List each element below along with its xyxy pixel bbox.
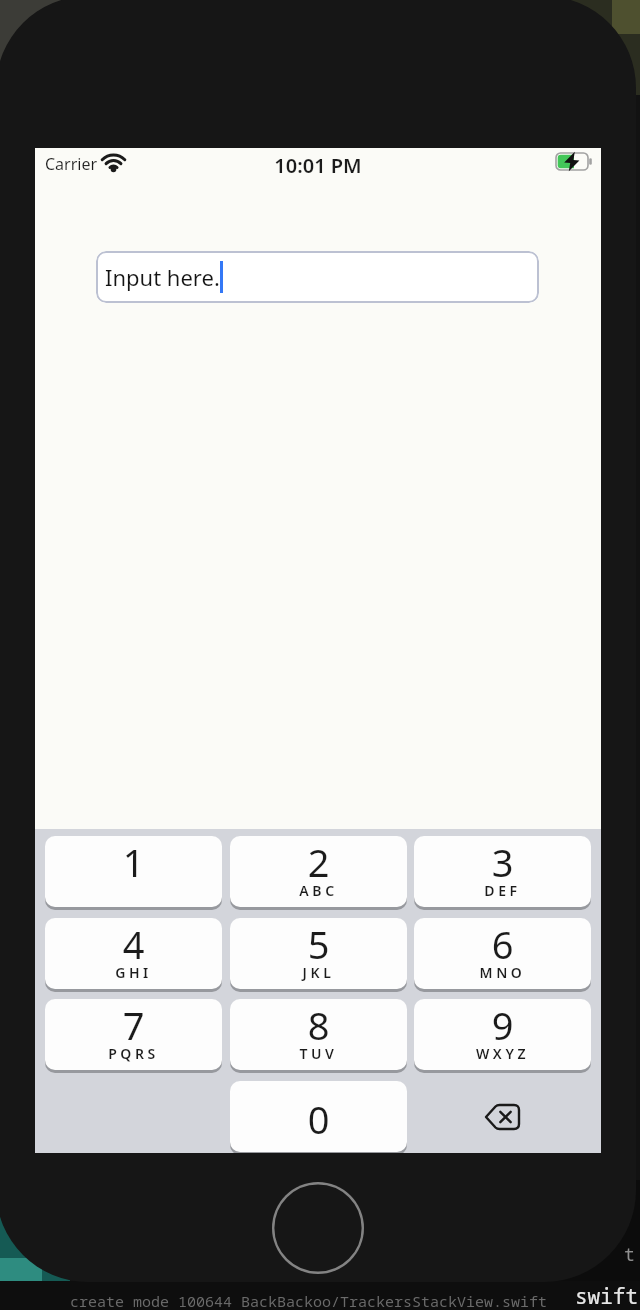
staticText: WXYZ: [414, 1044, 591, 1063]
button[interactable]: 5: [230, 918, 407, 989]
staticText: 10:01 PM: [35, 152, 601, 179]
staticText: JKL: [230, 963, 407, 982]
button[interactable]: 7: [45, 999, 222, 1070]
staticText: 5: [230, 918, 407, 970]
staticText: PQRS: [45, 1044, 222, 1063]
staticText: 1: [45, 836, 222, 888]
button[interactable]: 9: [414, 999, 591, 1070]
button[interactable]: 2: [230, 836, 407, 907]
staticText: 6: [414, 918, 591, 970]
staticText: Input here.: [105, 262, 220, 292]
staticText: TUV: [230, 1044, 407, 1063]
staticText: Carrier: [45, 153, 98, 175]
staticText: 3: [414, 836, 591, 888]
button[interactable]: Input here.: [96, 251, 539, 303]
staticText: t: [624, 1242, 635, 1267]
button[interactable]: [414, 1081, 591, 1152]
button[interactable]: 6: [414, 918, 591, 989]
staticText: create mode 100644 BackBackoo/TrackersSt…: [70, 1291, 548, 1310]
staticText: 2: [230, 836, 407, 888]
staticText: MNO: [414, 963, 591, 982]
staticText: swift: [575, 1282, 638, 1310]
button[interactable]: [272, 1182, 364, 1274]
staticText: 8: [230, 999, 407, 1051]
staticText: ABC: [230, 881, 407, 900]
staticText: 7: [45, 999, 222, 1051]
staticText: 4: [45, 918, 222, 970]
staticText: 9: [414, 999, 591, 1051]
staticText: DEF: [414, 881, 591, 900]
button[interactable]: 4: [45, 918, 222, 989]
button[interactable]: 0: [230, 1081, 407, 1152]
staticText: 0: [230, 1093, 407, 1145]
staticText: GHI: [45, 963, 222, 982]
button[interactable]: 1: [45, 836, 222, 907]
button[interactable]: 3: [414, 836, 591, 907]
button[interactable]: 8: [230, 999, 407, 1070]
